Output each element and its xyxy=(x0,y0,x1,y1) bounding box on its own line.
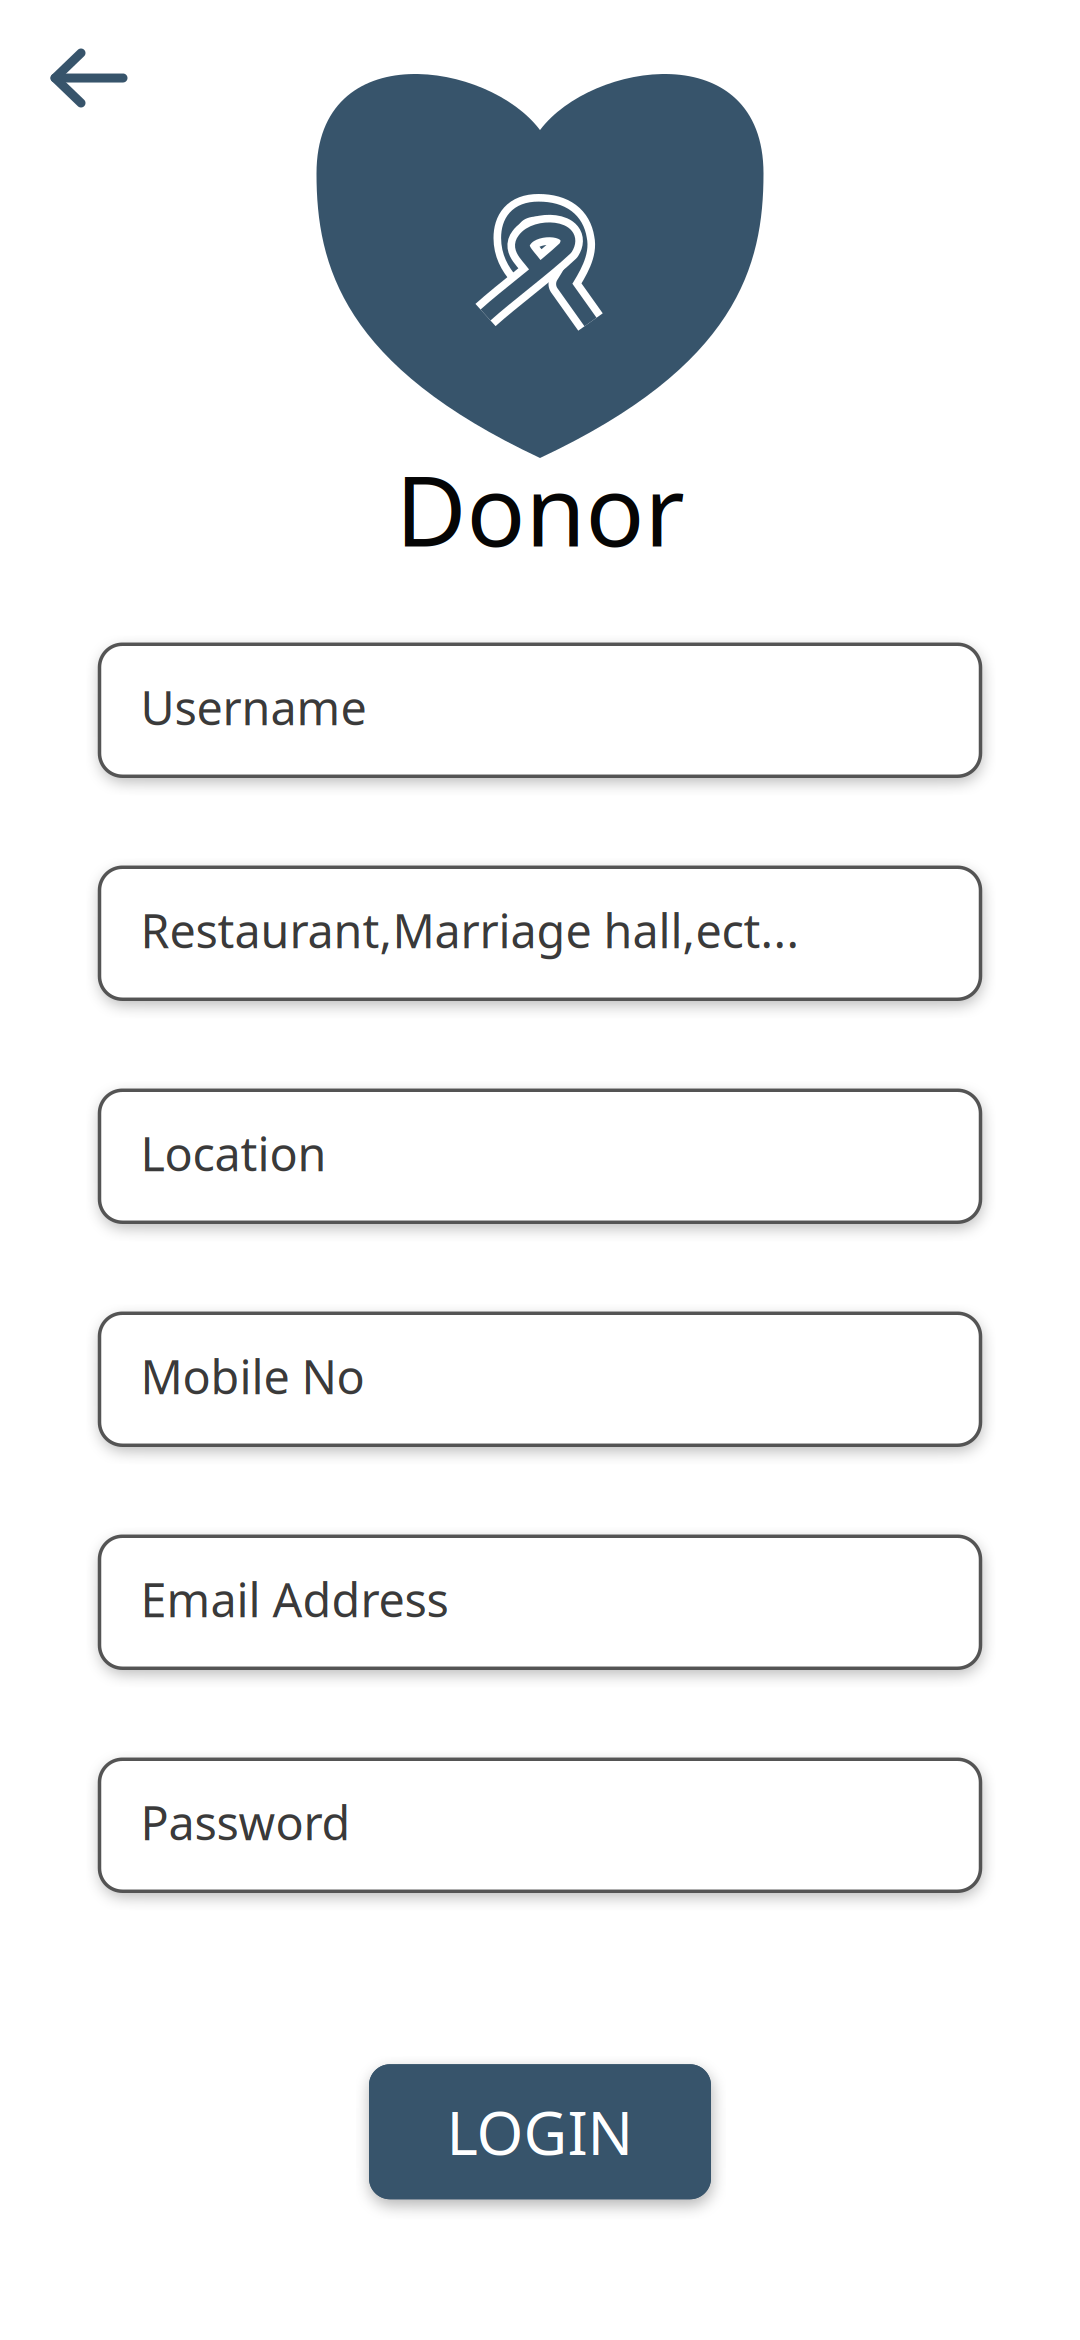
staticText: Username xyxy=(140,676,366,738)
staticText: Mobile No xyxy=(140,1345,364,1407)
button[interactable]: LOGIN xyxy=(369,2064,711,2199)
staticText: LOGIN xyxy=(446,2092,633,2172)
button[interactable]: Back xyxy=(0,0,128,106)
staticText: Password xyxy=(140,1791,350,1853)
staticText: Restaurant,Marriage hall,ect... xyxy=(140,899,799,961)
staticText: Email Address xyxy=(140,1568,448,1630)
staticText: Location xyxy=(140,1122,326,1184)
staticText: Donor xyxy=(395,444,684,573)
